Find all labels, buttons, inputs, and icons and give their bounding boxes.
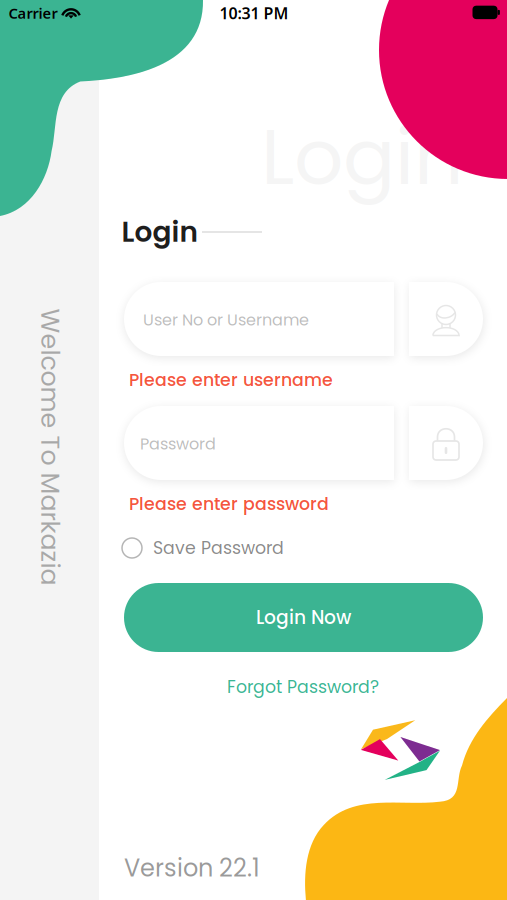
staticText: Login Now: [256, 604, 351, 630]
staticText: 10:31 PM: [219, 2, 288, 24]
staticText: Welcome To Markazia: [0, 429, 188, 465]
staticText: Login: [261, 103, 463, 211]
staticText: Login: [121, 212, 198, 252]
staticText: Password: [140, 433, 216, 455]
staticText: Forgot Password?: [227, 675, 379, 699]
staticText: Save Password: [153, 536, 284, 560]
staticText: Carrier: [8, 3, 57, 23]
staticText: Please enter username: [129, 368, 333, 392]
staticText: User No or Username: [143, 309, 309, 331]
button[interactable]: Save Password: [122, 536, 284, 560]
staticText: Please enter password: [129, 492, 329, 516]
staticText: Version 22.1: [124, 851, 260, 885]
button[interactable]: Login Now: [124, 583, 483, 652]
button[interactable]: Forgot Password?: [227, 675, 379, 699]
